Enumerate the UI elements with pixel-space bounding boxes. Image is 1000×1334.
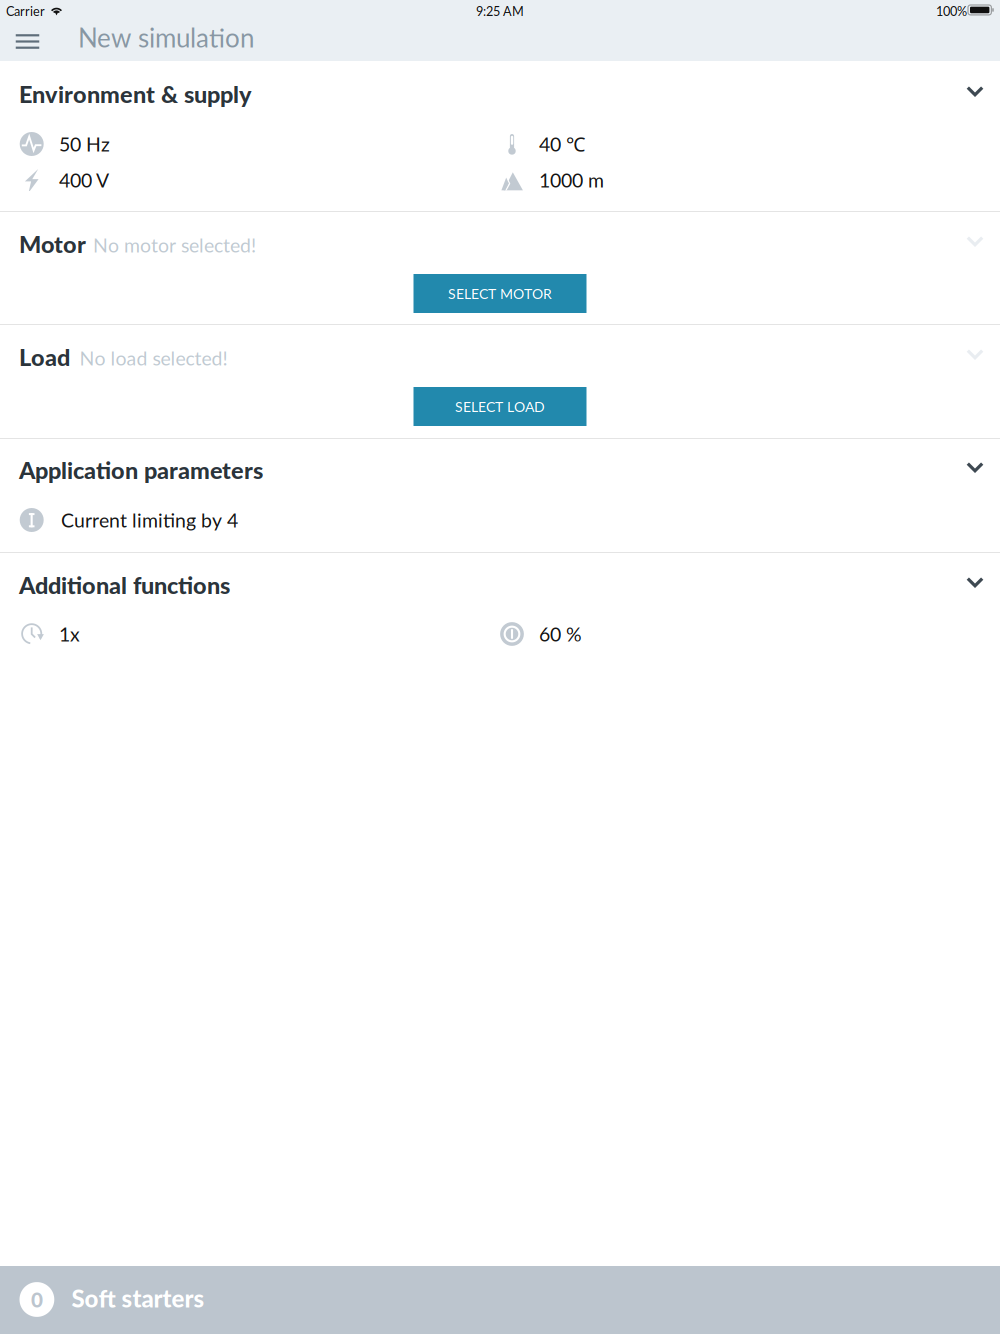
staticText: Environment & supply bbox=[19, 80, 251, 108]
staticText: 40 ℃ bbox=[539, 131, 585, 157]
staticText: Current limiting by 4 bbox=[61, 508, 238, 532]
staticText: 400 V bbox=[59, 168, 109, 192]
button[interactable]: SELECT LOAD bbox=[413, 387, 586, 426]
button[interactable]: Collapse Load bbox=[947, 337, 1000, 371]
staticText: Load bbox=[19, 343, 70, 371]
button[interactable]: SELECT MOTOR bbox=[413, 274, 586, 313]
staticText: 50 Hz bbox=[59, 132, 110, 156]
staticText: 9:25 AM bbox=[476, 3, 524, 19]
staticText: No load selected! bbox=[79, 346, 227, 370]
staticText: Carrier bbox=[6, 3, 45, 19]
button[interactable]: Menu bbox=[0, 22, 55, 61]
button[interactable]: Collapse Application parameters bbox=[947, 450, 1000, 484]
staticText: Motor bbox=[19, 230, 86, 258]
button[interactable]: 0 bbox=[0, 1266, 1000, 1334]
button[interactable]: Collapse Environment & supply bbox=[947, 74, 1000, 108]
staticText: Additional functions bbox=[19, 571, 230, 599]
button[interactable]: Collapse Motor bbox=[947, 224, 1000, 258]
button[interactable]: New simulation bbox=[78, 18, 255, 57]
staticText: 1x bbox=[59, 622, 80, 646]
button[interactable]: Collapse Additional functions bbox=[947, 565, 1000, 599]
staticText: 100% bbox=[936, 3, 967, 19]
staticText: SELECT MOTOR bbox=[448, 285, 552, 302]
staticText: 0 bbox=[31, 1287, 43, 1312]
staticText: Soft starters bbox=[71, 1284, 204, 1313]
staticText: 60 % bbox=[539, 622, 582, 646]
staticText: SELECT LOAD bbox=[455, 398, 545, 415]
staticText: New simulation bbox=[78, 22, 255, 53]
staticText: 1000 m bbox=[539, 168, 604, 192]
staticText: Application parameters bbox=[19, 456, 263, 484]
staticText: No motor selected! bbox=[93, 233, 256, 257]
